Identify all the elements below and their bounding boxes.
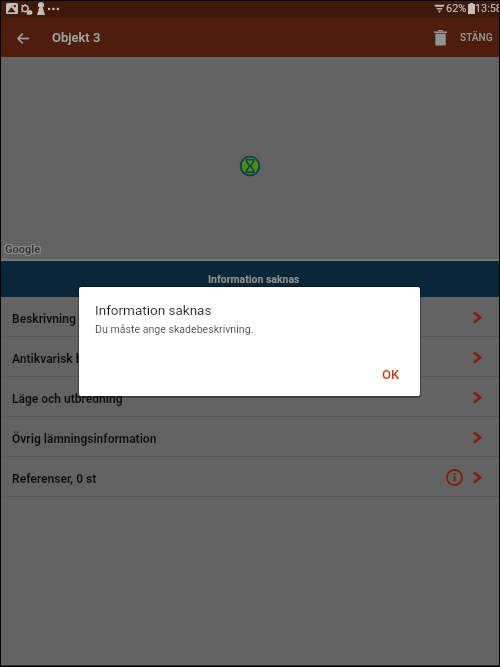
staticText: Google	[5, 243, 41, 256]
staticText: Information saknas	[95, 302, 212, 318]
button[interactable]: STÄNG	[452, 23, 500, 53]
staticText: Beskrivning	[12, 312, 76, 326]
staticText: Du måste ange skadebeskrivning.	[95, 323, 254, 335]
button[interactable]: Läge och utbredning	[0, 377, 500, 417]
staticText: Information saknas	[208, 273, 300, 285]
staticText: Google	[6, 242, 42, 255]
staticText: Google	[6, 244, 42, 257]
staticText: Referenser, 0 st	[12, 472, 97, 486]
staticText: OK	[382, 367, 400, 382]
button[interactable]: Antikvarisk bedömning	[0, 337, 500, 377]
button[interactable]: Delete	[423, 21, 457, 55]
staticText: 62%	[446, 2, 467, 15]
button[interactable]: OK	[374, 363, 408, 386]
button[interactable]: Beskrivning	[0, 297, 500, 337]
staticText: Google	[4, 244, 40, 257]
staticText: Objekt 3	[52, 30, 101, 45]
button[interactable]: Back	[7, 22, 39, 54]
button[interactable]: Övrig lämningsinformation	[0, 417, 500, 457]
staticText: Google	[4, 242, 40, 255]
staticText: Läge och utbredning	[12, 392, 123, 406]
staticText: STÄNG	[460, 32, 493, 44]
staticText: 13:58	[475, 2, 500, 15]
staticText: Google	[4, 243, 40, 256]
staticText: Google	[6, 243, 42, 256]
staticText: Övrig lämningsinformation	[12, 432, 157, 446]
staticText: Antikvarisk bedömning	[12, 352, 137, 366]
staticText: Google	[5, 244, 41, 257]
staticText: Google	[5, 242, 41, 255]
button[interactable]: Referenser, 0 st	[0, 457, 500, 497]
